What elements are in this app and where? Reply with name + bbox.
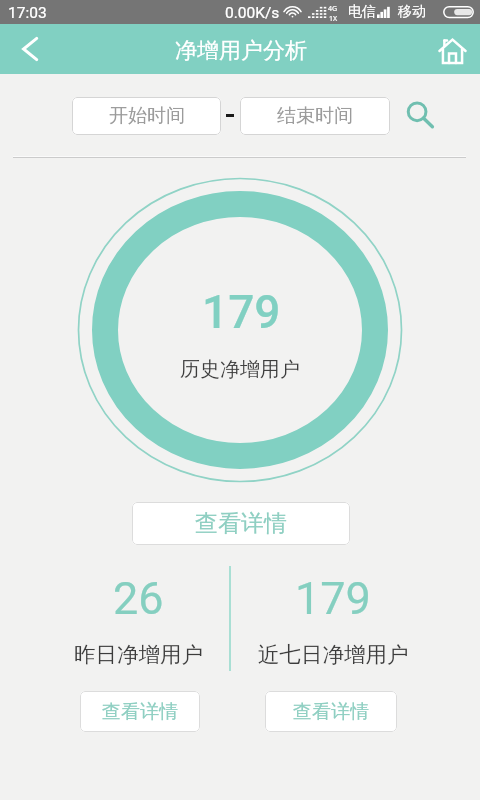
button[interactable]: 查看详情 bbox=[132, 502, 350, 545]
staticText: 净增用户分析 bbox=[175, 37, 307, 65]
staticText: 26 bbox=[113, 572, 164, 625]
staticText: 近七日净增用户 bbox=[258, 641, 409, 668]
button[interactable]: 结束时间 bbox=[240, 97, 390, 135]
button[interactable]: 查看详情 bbox=[265, 691, 397, 732]
button[interactable]: 查看详情 bbox=[80, 691, 200, 732]
staticText: 4G bbox=[328, 4, 338, 14]
staticText: 电信 bbox=[348, 3, 376, 21]
staticText: 开始时间 bbox=[109, 104, 185, 128]
staticText: 查看详情 bbox=[195, 509, 287, 538]
button[interactable]: Back bbox=[0, 24, 56, 74]
staticText: 移动 bbox=[398, 3, 426, 21]
staticText: 查看详情 bbox=[293, 700, 369, 724]
staticText: 查看详情 bbox=[102, 700, 178, 724]
button[interactable]: Home bbox=[424, 24, 480, 74]
button[interactable]: 开始时间 bbox=[72, 97, 221, 135]
staticText: 17:03 bbox=[8, 4, 47, 22]
staticText: 0.00K/s bbox=[225, 4, 280, 22]
staticText: 179 bbox=[295, 572, 371, 625]
staticText: 历史净增用户 bbox=[180, 357, 300, 382]
staticText: 179 bbox=[202, 285, 281, 339]
button[interactable]: Search bbox=[399, 94, 443, 138]
staticText: 1X bbox=[329, 14, 338, 24]
staticText: 昨日净增用户 bbox=[74, 641, 203, 668]
staticText: 结束时间 bbox=[277, 104, 353, 128]
